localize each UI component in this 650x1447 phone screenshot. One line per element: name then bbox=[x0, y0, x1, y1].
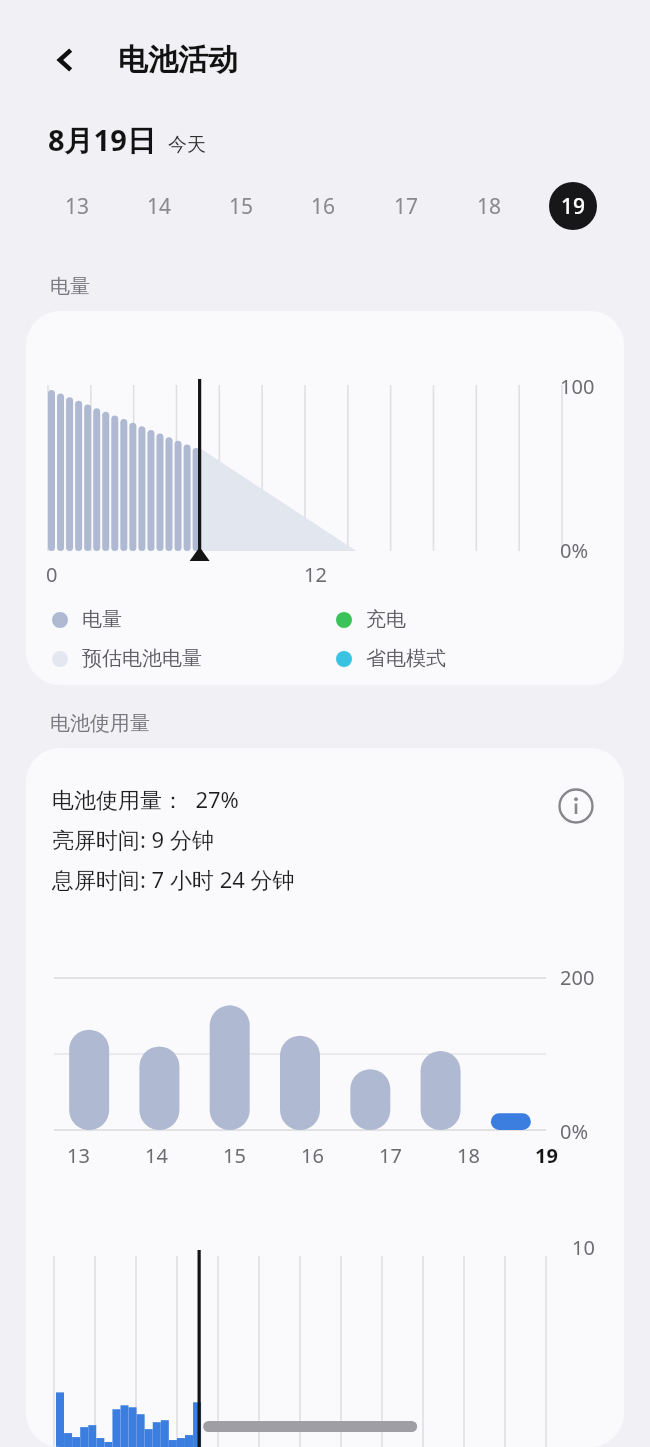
staticText: 13 bbox=[67, 1142, 90, 1169]
button[interactable]: 15 bbox=[200, 160, 282, 252]
staticText: 200 bbox=[560, 964, 595, 991]
staticText: 12 bbox=[304, 561, 327, 588]
staticText: 电池使用量 bbox=[50, 711, 150, 736]
staticText: 100 bbox=[560, 373, 595, 400]
staticText: 0 bbox=[46, 561, 58, 588]
staticText: 亮屏时间: 9 分钟 bbox=[52, 824, 214, 854]
staticText: 0% bbox=[560, 1118, 589, 1145]
staticText: 充电 bbox=[366, 607, 406, 632]
staticText: 预估电池电量 bbox=[82, 646, 202, 671]
button[interactable]: 19 bbox=[531, 160, 614, 252]
button[interactable]: 100 bbox=[26, 311, 624, 685]
staticText: 14 bbox=[147, 192, 172, 221]
staticText: 8月19日 bbox=[48, 120, 156, 160]
staticText: 0% bbox=[560, 537, 589, 564]
staticText: 15 bbox=[229, 192, 254, 221]
staticText: 息屏时间: 7 小时 24 分钟 bbox=[52, 864, 295, 894]
button[interactable]: 18 bbox=[448, 160, 531, 252]
staticText: 19 bbox=[561, 192, 586, 221]
staticText: 19 bbox=[535, 1142, 558, 1169]
staticText: 14 bbox=[145, 1142, 168, 1169]
button[interactable]: Info bbox=[554, 784, 598, 828]
button[interactable]: 17 bbox=[365, 160, 448, 252]
button[interactable]: 16 bbox=[282, 160, 365, 252]
staticText: 电池活动 bbox=[118, 41, 238, 79]
staticText: 18 bbox=[477, 192, 502, 221]
button[interactable]: 14 bbox=[118, 160, 200, 252]
staticText: 13 bbox=[65, 192, 90, 221]
staticText: 电量 bbox=[82, 607, 122, 632]
staticText: 今天 bbox=[168, 133, 206, 157]
staticText: 15 bbox=[223, 1142, 246, 1169]
button[interactable]: 13 bbox=[36, 160, 118, 252]
button[interactable]: Back bbox=[42, 36, 90, 84]
staticText: 省电模式 bbox=[366, 646, 446, 671]
staticText: 16 bbox=[301, 1142, 324, 1169]
staticText: 16 bbox=[311, 192, 336, 221]
staticText: 18 bbox=[457, 1142, 480, 1169]
staticText: 电量 bbox=[50, 274, 90, 299]
staticText: 17 bbox=[379, 1142, 402, 1169]
staticText: 电池使用量： 27% bbox=[52, 784, 239, 814]
staticText: 10 bbox=[572, 1234, 595, 1261]
staticText: 17 bbox=[394, 192, 419, 221]
